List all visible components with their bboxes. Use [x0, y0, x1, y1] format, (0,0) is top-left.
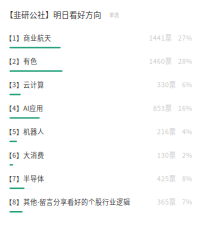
staticText: 【2】有色 — [5, 56, 37, 66]
button[interactable]: 【6】大消费 — [0, 150, 204, 173]
staticText: 7% — [182, 197, 192, 207]
staticText: 8% — [182, 173, 192, 183]
staticText: 330票 — [157, 80, 176, 89]
staticText: 130票 — [157, 150, 176, 160]
button[interactable]: 【4】AI应用 — [0, 103, 204, 126]
staticText: 【6】大消费 — [5, 150, 44, 160]
button[interactable]: 【3】云计算 — [0, 80, 204, 103]
button[interactable]: 【1】商业航天 — [0, 33, 204, 56]
staticText: 365票 — [157, 197, 176, 207]
button[interactable]: 【7】半导体 — [0, 173, 204, 197]
staticText: 27% — [178, 33, 192, 42]
staticText: 6% — [182, 80, 192, 89]
staticText: 【7】半导体 — [5, 173, 44, 183]
staticText: 【1】商业航天 — [5, 33, 51, 42]
staticText: 【韭研公社】明日看好方向 — [5, 9, 101, 20]
staticText: 【3】云计算 — [5, 80, 44, 89]
staticText: 4% — [182, 126, 192, 136]
staticText: 【4】AI应用 — [5, 103, 43, 113]
button[interactable]: 【8】其他-留言分享看好的个股行业逻辑 — [0, 197, 204, 220]
staticText: 2% — [182, 150, 192, 160]
staticText: 【5】机器人 — [5, 126, 44, 136]
staticText: 425票 — [157, 173, 176, 183]
staticText: 216票 — [157, 126, 176, 136]
button[interactable]: 【2】有色 — [0, 56, 204, 80]
staticText: 28% — [178, 56, 192, 66]
button[interactable]: 【5】机器人 — [0, 126, 204, 150]
staticText: 16% — [178, 103, 192, 113]
staticText: 1460票 — [149, 56, 172, 66]
staticText: 【8】其他-留言分享看好的个股行业逻辑 — [5, 197, 130, 207]
staticText: 单选 — [109, 11, 119, 18]
staticText: 853票 — [153, 103, 172, 113]
staticText: 1441票 — [149, 33, 172, 42]
